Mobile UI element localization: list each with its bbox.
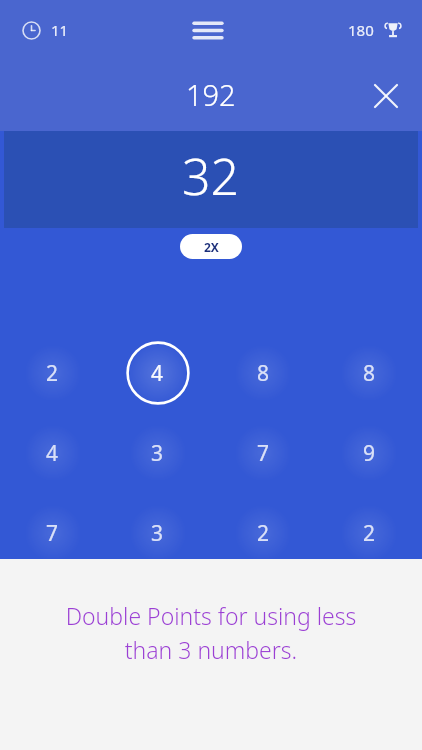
button[interactable]: 8 bbox=[316, 341, 422, 405]
button[interactable]: Menu bbox=[180, 11, 236, 50]
staticText: 32 bbox=[182, 142, 240, 210]
button[interactable]: 2 bbox=[316, 501, 422, 565]
button[interactable]: 3 bbox=[105, 421, 210, 485]
staticText: 4 bbox=[151, 359, 164, 388]
button[interactable]: 4 bbox=[105, 341, 210, 405]
staticText: 7 bbox=[46, 519, 59, 548]
button[interactable]: 2 bbox=[0, 341, 105, 405]
button[interactable]: Close bbox=[364, 74, 408, 118]
staticText: 2 bbox=[46, 359, 59, 388]
button[interactable]: 4 bbox=[0, 421, 105, 485]
staticText: 2 bbox=[257, 519, 270, 548]
button[interactable]: 2 bbox=[210, 501, 316, 565]
staticText: 8 bbox=[363, 359, 376, 388]
staticText: 11 bbox=[51, 20, 69, 40]
staticText: 8 bbox=[257, 359, 270, 388]
staticText: 180 bbox=[348, 20, 374, 40]
staticText: 4 bbox=[46, 439, 59, 468]
staticText: 2 bbox=[363, 519, 376, 548]
staticText: 7 bbox=[257, 439, 270, 468]
staticText: 2X bbox=[204, 239, 219, 255]
staticText: 3 bbox=[151, 439, 164, 468]
staticText: Double Points for using less than 3 numb… bbox=[14, 600, 408, 665]
staticText: 192 bbox=[186, 75, 236, 114]
button[interactable]: 8 bbox=[210, 341, 316, 405]
staticText: 3 bbox=[151, 519, 164, 548]
button[interactable]: 7 bbox=[210, 421, 316, 485]
button[interactable]: Time remaining bbox=[18, 16, 73, 44]
button[interactable]: 2X bbox=[180, 234, 242, 259]
button[interactable]: Best score bbox=[344, 16, 406, 44]
button[interactable]: 3 bbox=[105, 501, 210, 565]
button[interactable]: 9 bbox=[316, 421, 422, 485]
staticText: 9 bbox=[363, 439, 376, 468]
button[interactable]: 7 bbox=[0, 501, 105, 565]
